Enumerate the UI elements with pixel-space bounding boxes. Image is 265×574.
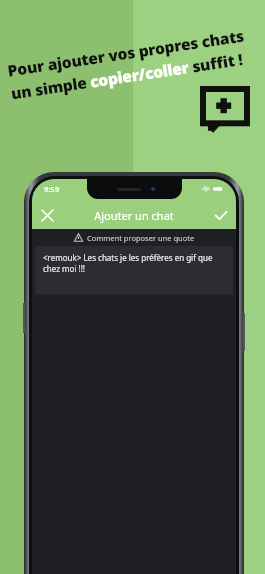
button[interactable]: Valider — [206, 201, 236, 229]
staticText: Pour ajouter vos propres chats — [6, 25, 246, 81]
staticText: Ajouter un chat — [62, 208, 206, 223]
staticText: 9:59 — [44, 184, 59, 194]
button[interactable]: <remouk> Les chats je les préfères en gi… — [35, 246, 233, 294]
button[interactable]: Fermer — [32, 201, 62, 229]
staticText: Comment proposer une quote — [87, 233, 195, 243]
button[interactable]: Comment proposer une quote — [32, 229, 236, 246]
staticText: un simple copier/coller suffit ! — [9, 48, 244, 103]
staticText: <remouk> Les chats je les préfères en gi… — [43, 252, 225, 274]
